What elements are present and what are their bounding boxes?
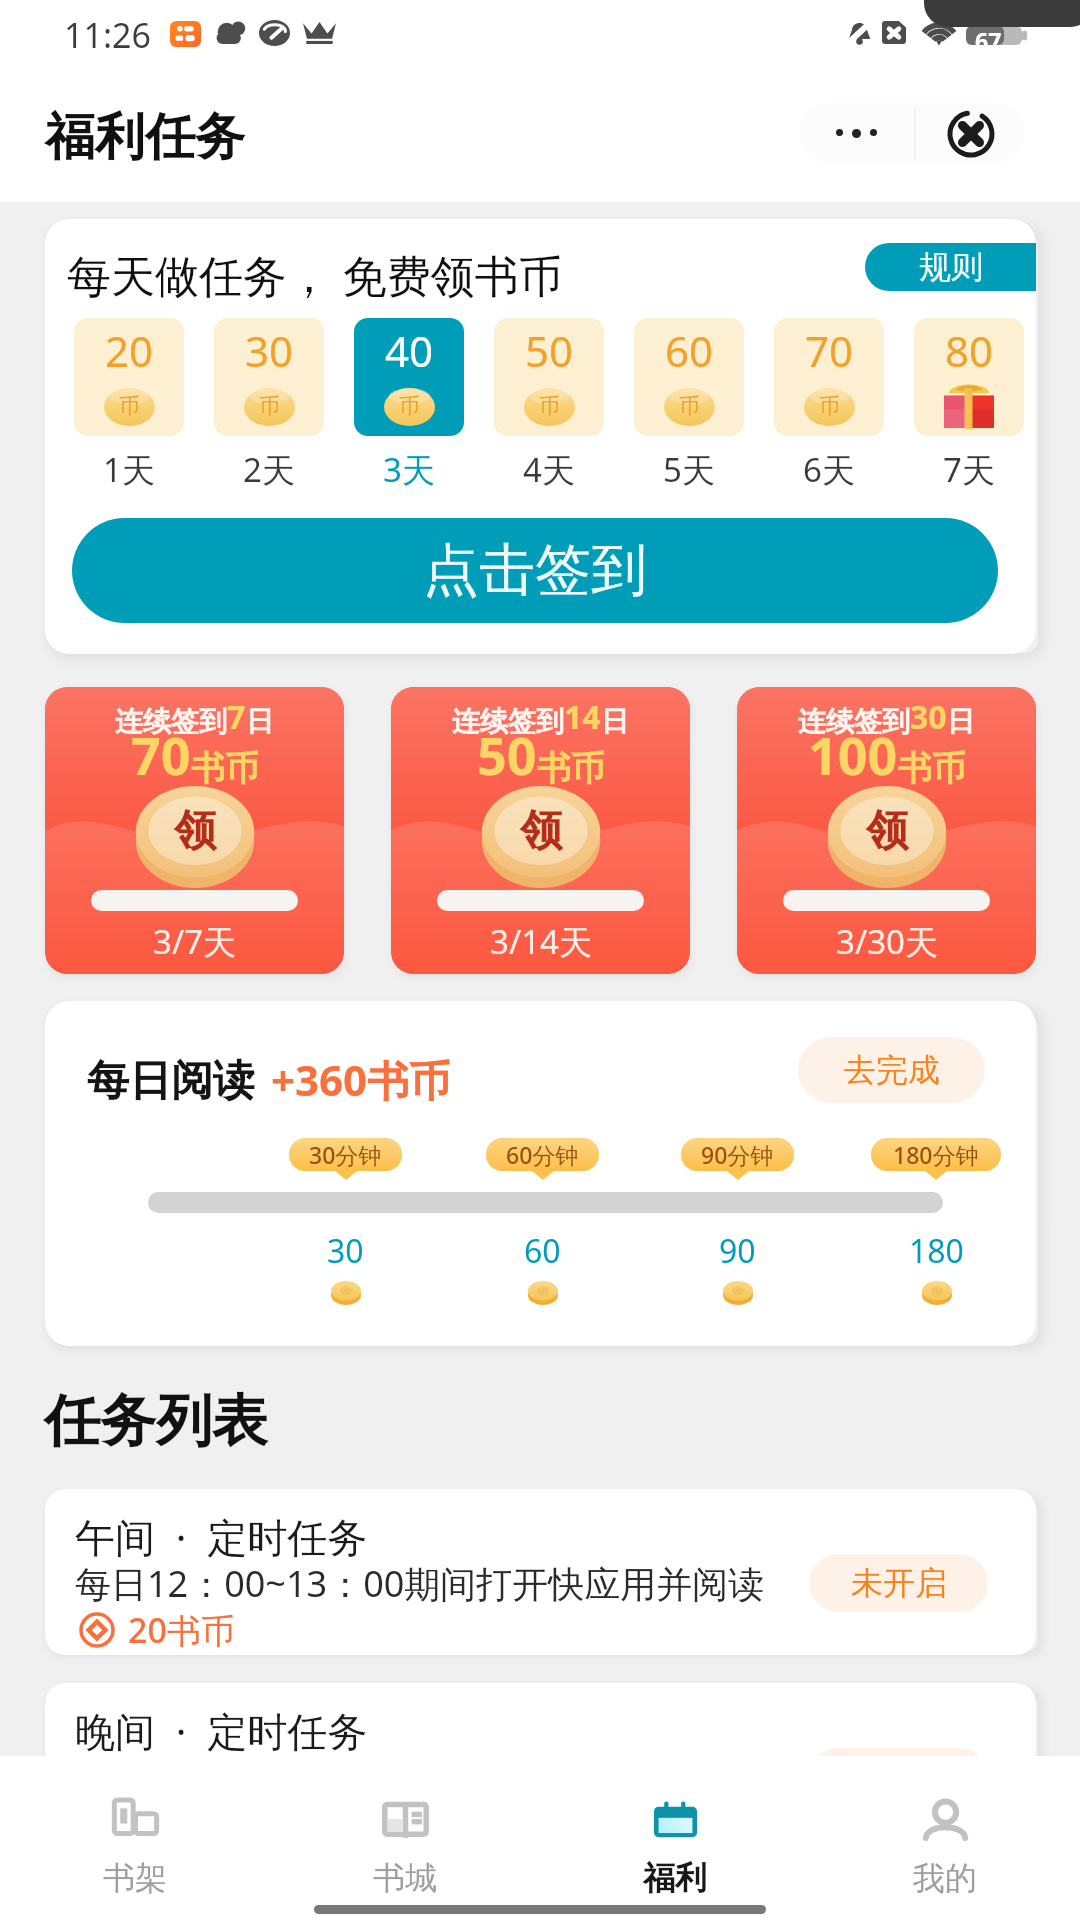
staticText: 领 [866,805,908,858]
staticText: 福利任务 [45,106,245,169]
staticText: 4天 [523,447,575,492]
staticText: 日 [601,704,629,739]
staticText: 20书币 [128,1801,235,1847]
staticText: 50 [525,322,574,379]
staticText: 晚间 · 定时任务 [75,1703,368,1758]
staticText: 连续签到 [452,704,564,739]
staticText: 书币 [898,747,966,790]
staticText: 30 [327,1229,364,1273]
staticText: 币 [679,393,700,419]
button[interactable]: 晚间 · 定时任务 [45,1683,1036,1849]
staticText: 币 [399,393,420,419]
staticText: 90 [719,1229,756,1273]
staticText: 7 [227,695,246,739]
staticText: 去完成 [844,1050,940,1090]
staticText: 每日12：00~13：00期间打开快应用并阅读 [75,1559,765,1608]
staticText: 日 [246,704,274,739]
staticText: 领 [174,805,216,858]
staticText: 180分钟 [893,1139,979,1170]
button[interactable]: 连续签到 [391,687,690,974]
staticText: 书架 [103,1858,167,1898]
button[interactable]: 40 [354,318,464,436]
staticText: 我的 [913,1858,977,1898]
staticText: 60 [524,1229,561,1273]
staticText: 30分钟 [309,1139,382,1170]
staticText: 6天 [803,447,855,492]
staticText: 任务列表 [44,1386,268,1457]
button[interactable]: Close [916,103,1025,164]
staticText: 3/14天 [490,919,592,964]
staticText: 5天 [663,447,715,492]
button[interactable]: 午间 · 定时任务 [45,1489,1036,1655]
staticText: 连续签到 [798,704,910,739]
staticText: 连续签到 [115,704,227,739]
staticText: 20书币 [128,1607,235,1653]
button[interactable]: 60 [634,318,744,436]
staticText: 每日18：00~20：00期间打开快应用并阅读 [75,1753,765,1802]
staticText: 30 [245,322,294,379]
staticText: 币 [259,393,280,419]
staticText: 60分钟 [506,1139,579,1170]
staticText: 每天做任务， 免费领书币 [67,245,563,305]
staticText: 每日阅读 [87,1055,255,1108]
staticText: 14 [564,695,601,739]
staticText: 午间 · 定时任务 [75,1509,368,1564]
staticText: 规则 [919,247,983,287]
staticText: 3/30天 [836,919,938,964]
staticText: 书城 [373,1858,437,1898]
staticText: 2天 [243,447,295,492]
button[interactable]: 书架 [0,1756,270,1920]
staticText: 3/7天 [153,919,237,964]
staticText: 40 [385,322,434,379]
button[interactable]: 70 [774,318,884,436]
staticText: 70 [131,719,191,790]
staticText: 书币 [537,747,605,790]
staticText: 领 [520,805,562,858]
staticText: 日 [947,704,975,739]
staticText: 50 [477,719,537,790]
button[interactable]: 书城 [270,1756,540,1920]
button[interactable]: 我的 [810,1756,1080,1920]
button[interactable]: 连续签到 [45,687,344,974]
staticText: 60 [665,322,714,379]
staticText: 书币 [191,747,259,790]
staticText: +360书币 [271,1051,452,1108]
button[interactable]: 30 [214,318,324,436]
staticText: 30 [910,695,947,739]
button[interactable]: More options [799,103,914,164]
button[interactable]: 50 [494,318,604,436]
button[interactable]: 去完成 [798,1037,985,1103]
staticText: 未开启 [851,1563,947,1603]
staticText: 70 [805,322,854,379]
button[interactable]: 点击签到 [72,518,998,623]
staticText: 币 [119,393,140,419]
staticText: 100 [808,719,898,790]
staticText: 20 [105,322,154,379]
staticText: 币 [539,393,560,419]
button[interactable]: 20 [74,318,184,436]
staticText: 福利 [643,1858,707,1898]
staticText: 点击签到 [423,535,647,606]
button[interactable]: 连续签到 [737,687,1036,974]
button[interactable]: 规则 [865,243,1036,291]
staticText: 11:26 [64,12,151,58]
button[interactable]: 80 [914,318,1024,436]
staticText: 67 [975,25,1002,56]
staticText: 3天 [383,447,435,492]
staticText: 180 [909,1229,964,1273]
staticText: 80 [945,322,994,379]
staticText: 1天 [103,447,155,492]
button[interactable]: 福利 [540,1756,810,1920]
staticText: 90分钟 [701,1139,774,1170]
staticText: 币 [819,393,840,419]
staticText: 7天 [943,447,995,492]
